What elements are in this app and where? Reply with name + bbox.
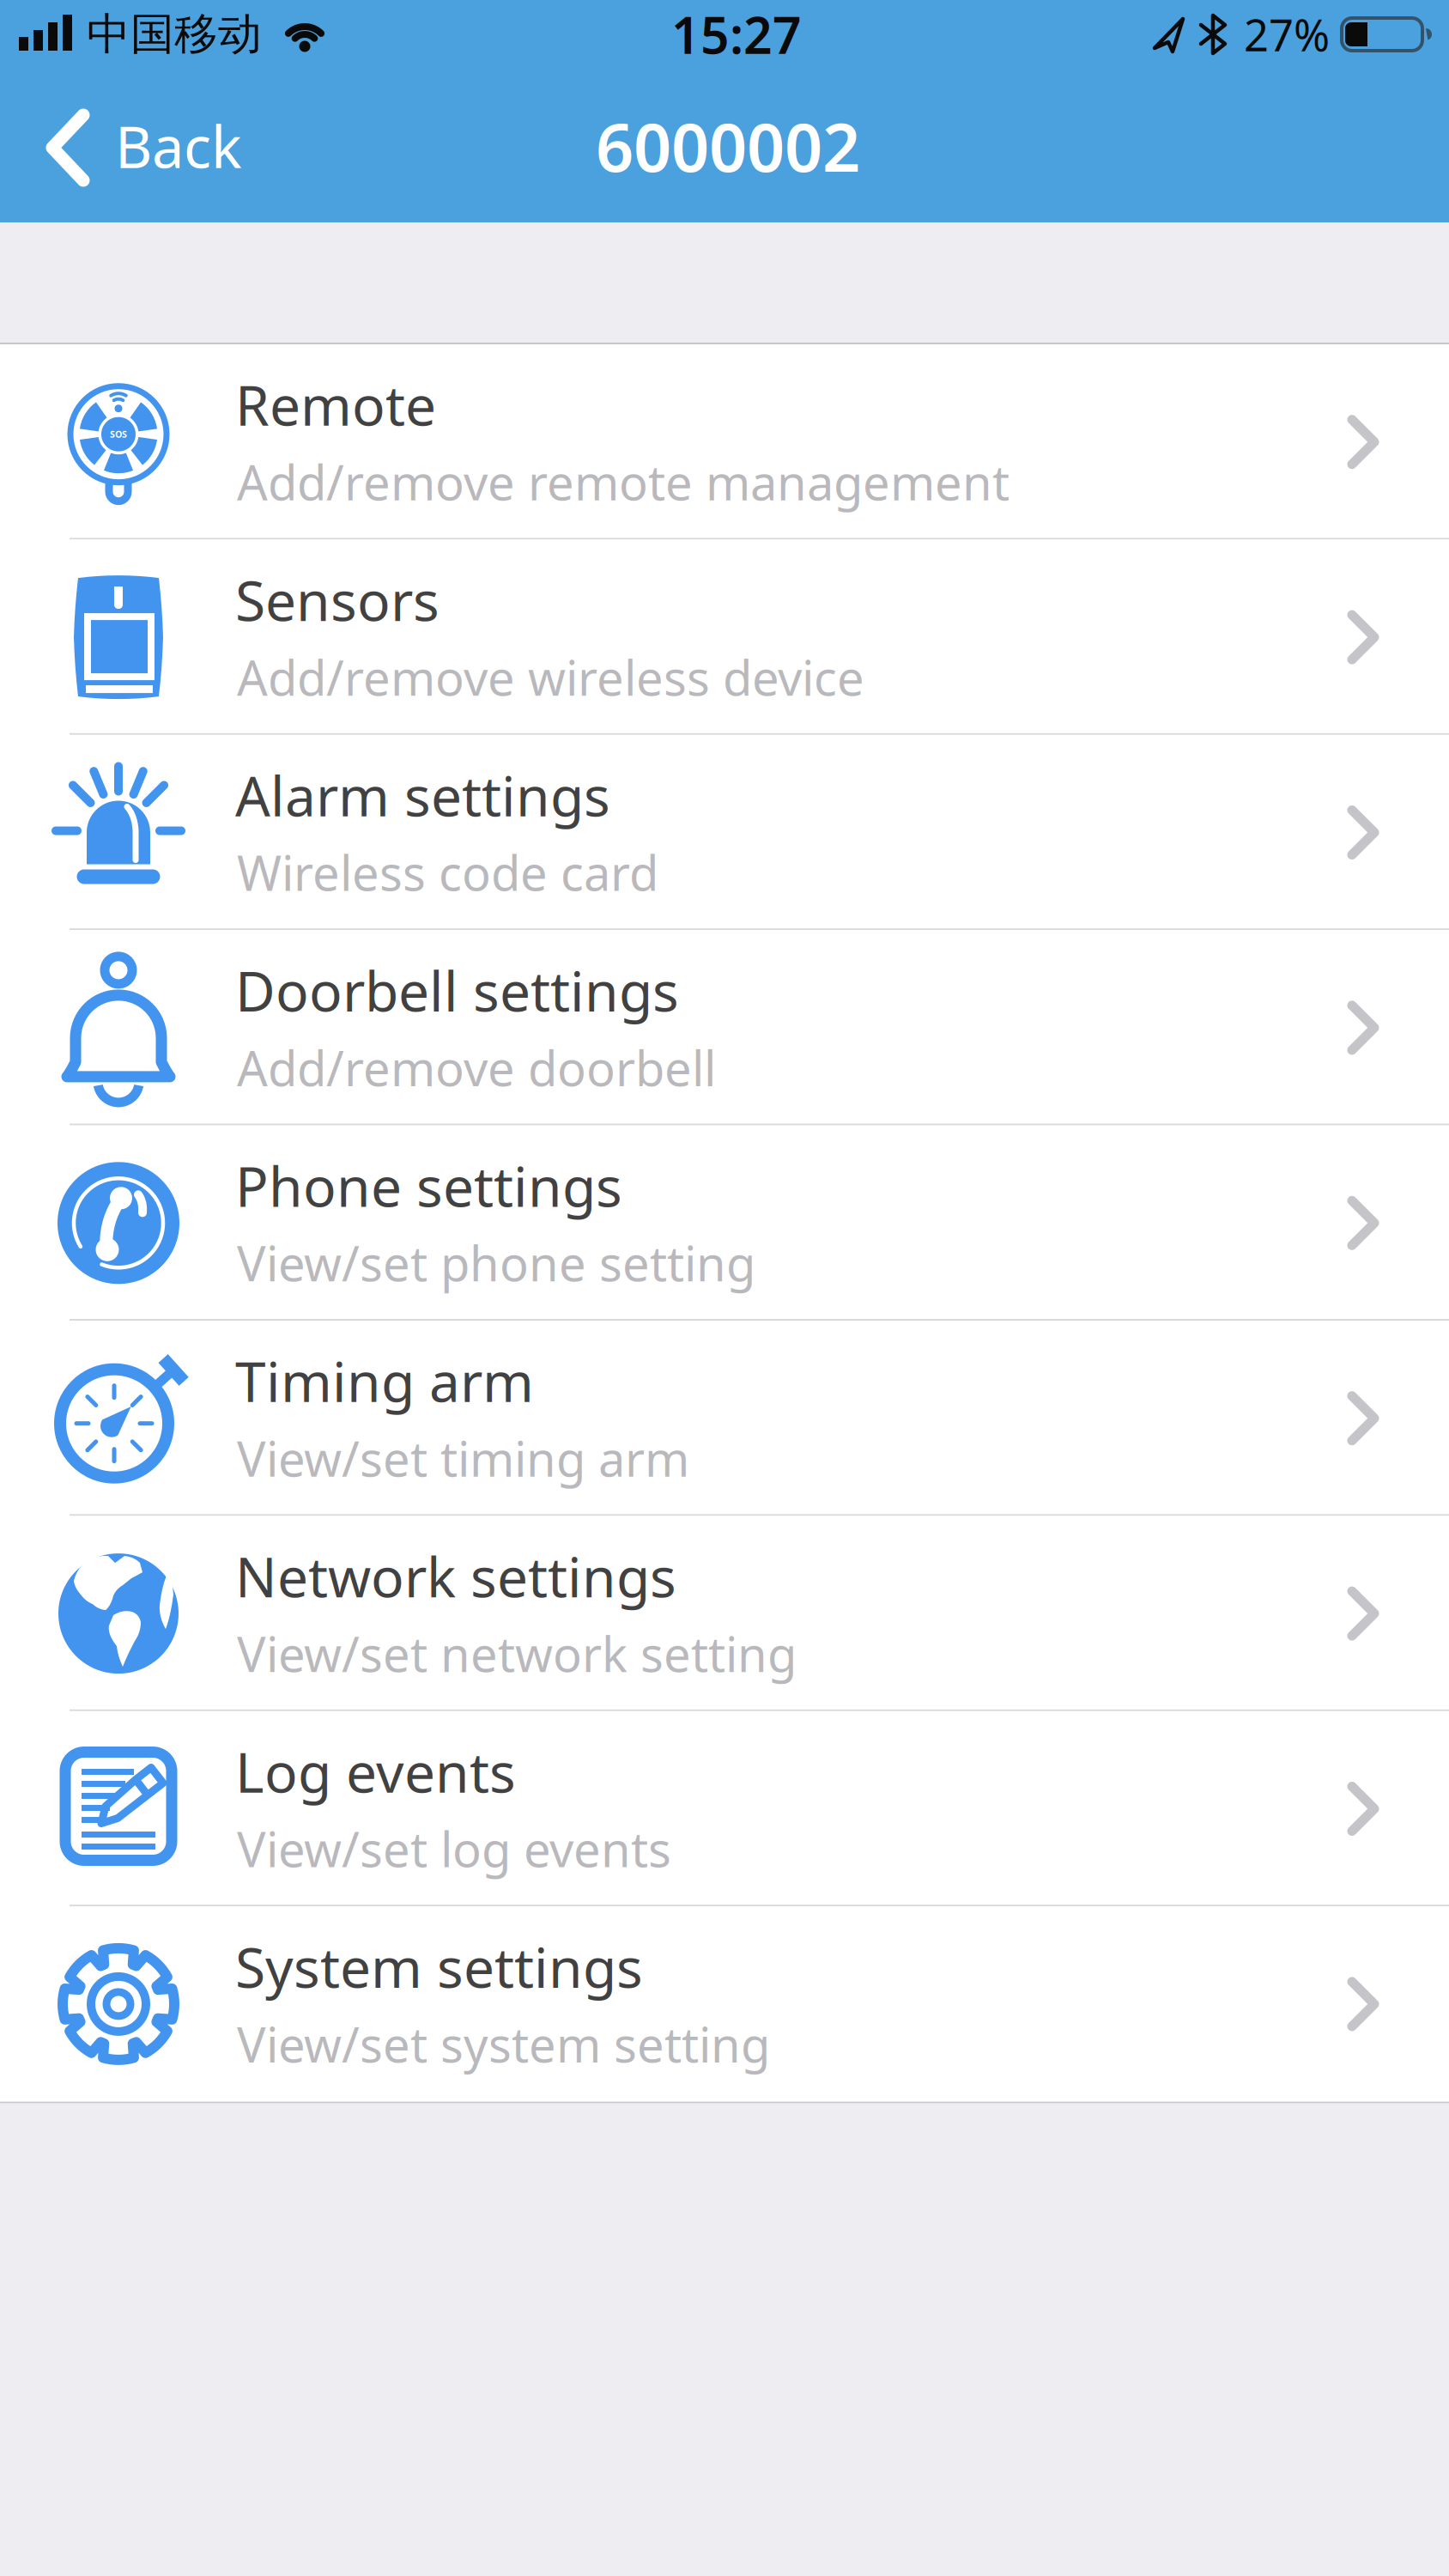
staticText: View/set timing arm [237,1426,689,1490]
button[interactable]: Back [0,69,292,222]
staticText: 15:27 [671,1,802,68]
staticText: View/set system setting [237,2012,770,2076]
staticText: View/set log events [237,1817,671,1880]
button[interactable]: System settings [0,1906,1449,2102]
staticText: Doorbell settings [235,954,679,1027]
button[interactable]: Network settings [0,1516,1449,1711]
staticText: Log events [235,1735,516,1808]
staticText: 中国移动 [87,8,262,61]
staticText: View/set network setting [237,1621,797,1685]
staticText: Add/remove wireless device [237,645,864,709]
staticText: Phone settings [235,1149,622,1222]
button[interactable]: SOS [0,344,1449,540]
staticText: View/set phone setting [237,1231,755,1295]
staticText: Back [115,108,242,184]
staticText: 6000002 [596,102,860,190]
button[interactable]: Alarm settings [0,735,1449,930]
staticText: Add/remove doorbell [237,1036,716,1099]
staticText: Network settings [235,1540,676,1612]
staticText: Remote [235,368,436,441]
staticText: System settings [235,1930,643,2003]
button[interactable]: Doorbell settings [0,930,1449,1125]
staticText: Sensors [235,563,440,636]
staticText: Timing arm [235,1344,534,1417]
staticText: Alarm settings [235,758,610,831]
staticText: 27% [1244,5,1330,63]
staticText: SOS [110,428,127,440]
staticText: Wireless code card [237,840,658,904]
button[interactable]: Log events [0,1711,1449,1906]
button[interactable]: Phone settings [0,1125,1449,1321]
button[interactable]: Sensors [0,540,1449,735]
button[interactable]: Timing arm [0,1321,1449,1516]
staticText: Add/remove remote management [237,450,1009,514]
